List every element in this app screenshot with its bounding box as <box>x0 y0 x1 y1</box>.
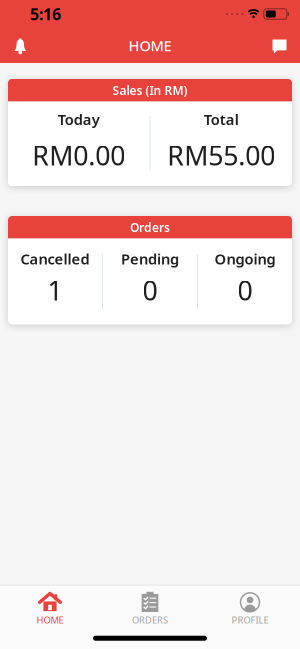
button[interactable]: HOME <box>0 587 100 626</box>
staticText: Total <box>204 109 239 129</box>
staticText: RM55.00 <box>167 137 275 173</box>
staticText: ORDERS <box>132 614 168 626</box>
staticText: HOME <box>128 36 171 55</box>
staticText: Orders <box>130 219 170 235</box>
button[interactable]: ORDERS <box>100 587 200 626</box>
staticText: 0 <box>237 272 252 308</box>
staticText: Ongoing <box>214 249 275 268</box>
button[interactable]: Notifications <box>0 29 27 62</box>
staticText: Cancelled <box>20 249 89 268</box>
staticText: 1 <box>47 272 62 308</box>
staticText: 0 <box>142 272 157 308</box>
staticText: Pending <box>121 249 179 268</box>
button[interactable]: PROFILE <box>200 587 300 626</box>
button[interactable]: Messages <box>272 29 300 61</box>
staticText: 5:16 <box>30 3 61 25</box>
staticText: HOME <box>36 614 63 626</box>
staticText: PROFILE <box>231 614 268 626</box>
staticText: Sales (In RM) <box>112 82 187 98</box>
staticText: RM0.00 <box>32 137 125 173</box>
staticText: Today <box>58 109 100 129</box>
